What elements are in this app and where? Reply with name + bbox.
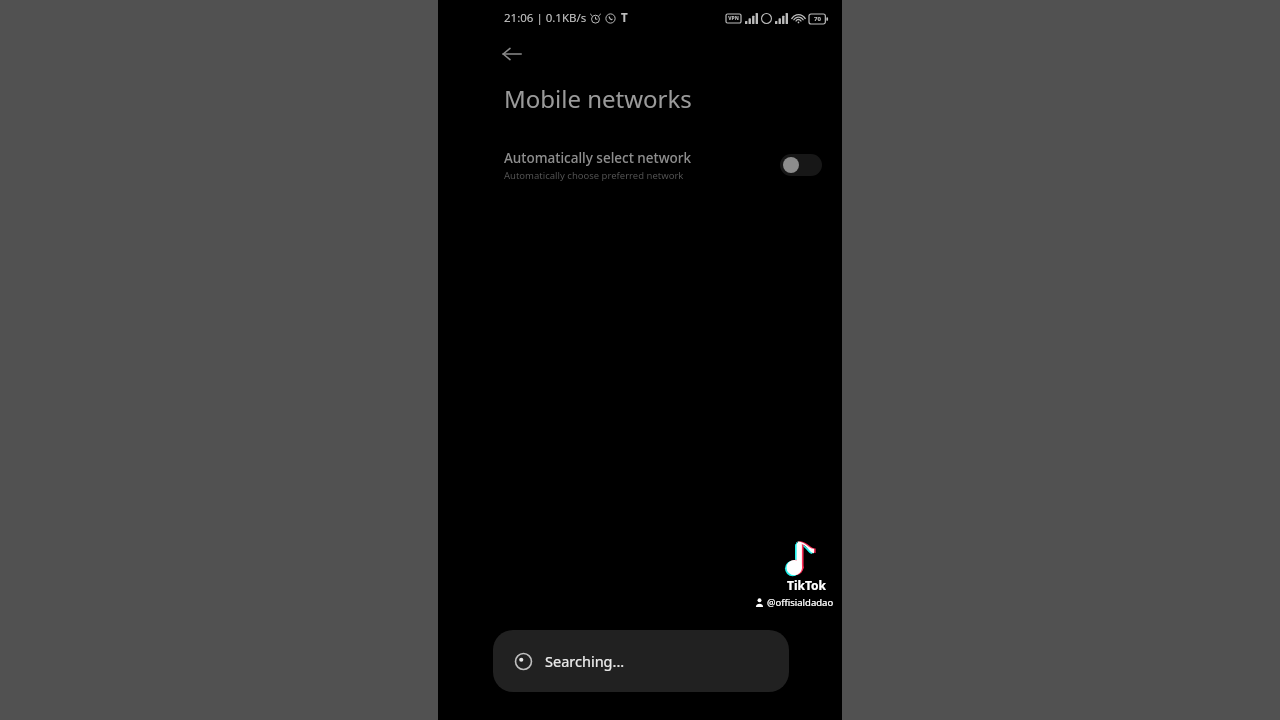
staticText: 70: [814, 15, 821, 23]
button[interactable]: Automatically select network: [438, 139, 842, 191]
button[interactable]: Back: [494, 36, 530, 72]
button[interactable]: Automatically select network toggle: [780, 154, 822, 176]
button[interactable]: Searching...: [493, 630, 789, 692]
staticText: TikTok: [787, 577, 826, 593]
staticText: Searching...: [545, 651, 625, 671]
staticText: @offisialdadao: [767, 596, 834, 609]
staticText: 21:06 | 0.1KB/s: [504, 10, 587, 26]
staticText: VPN: [728, 15, 739, 22]
staticText: T: [621, 10, 628, 26]
staticText: Automatically choose preferred network: [504, 169, 684, 182]
staticText: Automatically select network: [504, 149, 692, 167]
staticText: Mobile networks: [504, 82, 692, 115]
